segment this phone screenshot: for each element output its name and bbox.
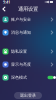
staticText: 通用设置 [18,6,38,12]
staticText: 隐私设置 [11,49,27,54]
button[interactable]: 退出登录 [14,92,42,99]
button[interactable]: 消息与通知 [0,26,56,39]
staticText: 深色模式 [11,75,27,80]
button[interactable]: Back [0,5,8,13]
staticText: 显示与亮度 [11,62,31,67]
staticText: 账户与安全 [11,17,31,22]
staticText: 退出登录 [20,93,36,98]
button[interactable]: 深色模式 [0,71,56,84]
button[interactable]: 显示与亮度 [0,58,56,71]
staticText: 消息与通知 [11,30,31,35]
button[interactable]: 隐私设置 [0,45,56,58]
staticText: 9:41 [3,0,10,5]
button[interactable]: 账户与安全 [0,13,56,26]
